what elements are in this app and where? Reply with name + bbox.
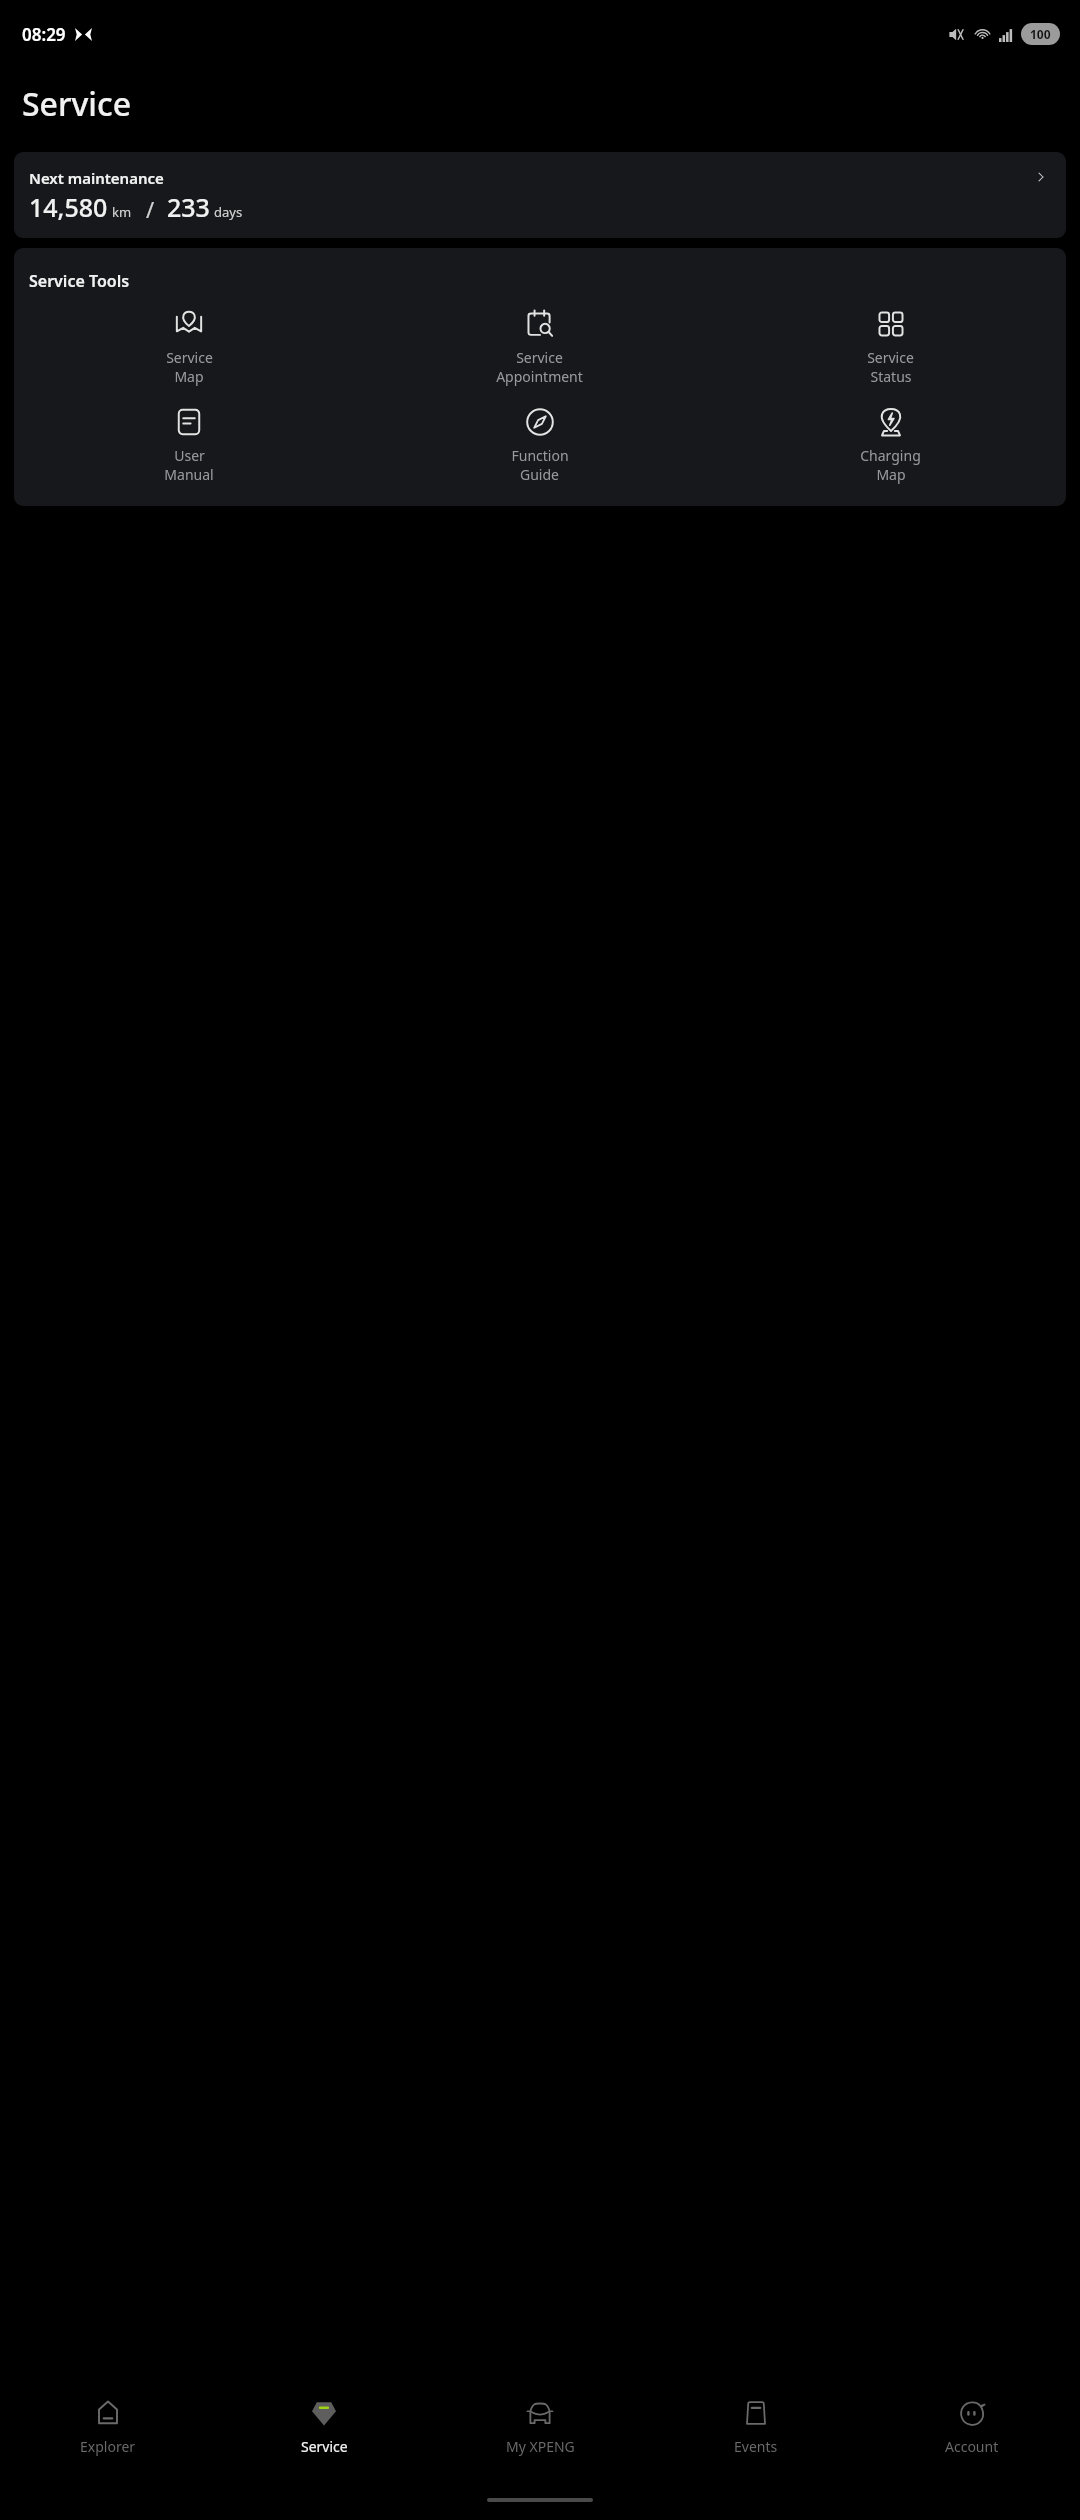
staticText: Service [22, 82, 132, 126]
button[interactable]: Service [14, 304, 364, 390]
staticText: / [146, 194, 155, 224]
staticText: Events [734, 2437, 778, 2456]
staticText: Appointment [496, 367, 583, 386]
staticText: km [112, 203, 132, 221]
staticText: Status [870, 367, 912, 386]
button[interactable]: Explorer [0, 2384, 216, 2480]
button[interactable]: Service [364, 304, 715, 390]
button[interactable]: Account [864, 2384, 1080, 2480]
staticText: 233 [167, 190, 210, 224]
staticText: Map [876, 465, 906, 484]
staticText: Service Tools [29, 270, 130, 292]
staticText: Function [511, 446, 569, 465]
staticText: Map [174, 367, 204, 386]
button[interactable]: Events [648, 2384, 864, 2480]
button[interactable]: My XPENG [432, 2384, 648, 2480]
staticText: User [174, 446, 205, 465]
staticText: 08:29 [22, 23, 66, 46]
staticText: Service [867, 348, 914, 367]
staticText: 100 [1030, 26, 1051, 42]
button[interactable]: Charging [715, 402, 1066, 488]
staticText: Service [516, 348, 563, 367]
staticText: Charging [860, 446, 921, 465]
button[interactable]: Next maintenance [14, 152, 1066, 238]
staticText: Account [945, 2437, 999, 2456]
staticText: Guide [520, 465, 559, 484]
staticText: Service [166, 348, 213, 367]
staticText: Service [301, 2437, 348, 2456]
staticText: days [214, 203, 243, 221]
staticText: 14,580 [29, 190, 108, 224]
button[interactable]: Service [216, 2384, 432, 2480]
button[interactable]: Function [364, 402, 715, 488]
button[interactable]: User [14, 402, 364, 488]
staticText: My XPENG [506, 2437, 575, 2456]
staticText: Next maintenance [29, 168, 164, 188]
button[interactable]: Service [715, 304, 1066, 390]
staticText: Explorer [80, 2437, 136, 2456]
staticText: Manual [164, 465, 214, 484]
